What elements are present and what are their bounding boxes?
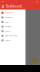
staticText: Answers xyxy=(5,26,12,27)
staticText: Reports xyxy=(5,30,11,32)
staticText: Dashboard xyxy=(5,12,14,14)
button[interactable]: Compose xyxy=(33,59,37,63)
button[interactable]: Settings xyxy=(0,20,25,24)
staticText: Other Subsystem xyxy=(5,35,17,37)
button[interactable]: Residency xyxy=(0,15,25,20)
staticText: Settings xyxy=(5,21,10,23)
button[interactable]: Logout xyxy=(0,38,25,43)
staticText: Dashboard xyxy=(6,5,22,8)
staticText: 9:41 xyxy=(1,1,4,3)
staticText: Logout xyxy=(5,39,10,41)
staticText: Residency xyxy=(5,16,13,18)
staticText: LTE xyxy=(36,1,39,3)
button[interactable]: Other Subsystem xyxy=(0,33,25,38)
button[interactable]: Menu xyxy=(1,3,5,9)
button[interactable]: Answers xyxy=(0,24,25,29)
button[interactable]: Dashboard xyxy=(0,10,25,15)
button[interactable]: Reports xyxy=(0,29,25,33)
